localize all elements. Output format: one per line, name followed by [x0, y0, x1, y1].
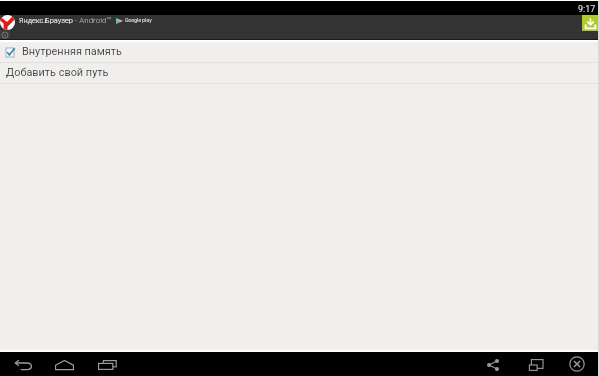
staticText: 9:17 — [578, 4, 596, 15]
button[interactable]: Share — [483, 354, 503, 374]
button[interactable]: Добавить свой путь — [0, 63, 600, 83]
button[interactable]: Close — [568, 354, 588, 374]
staticText: Внутренняя память — [22, 45, 122, 58]
button[interactable]: Recent apps — [94, 354, 119, 374]
button[interactable]: Resize window — [526, 354, 546, 374]
staticText: - Android™ — [75, 16, 112, 25]
button[interactable]: Внутренняя память — [0, 42, 600, 63]
staticText: Яндекс.Браузер — [19, 16, 73, 25]
button[interactable]: Back — [11, 354, 36, 374]
button[interactable]: Install — [582, 15, 598, 31]
button[interactable]: App info — [2, 32, 8, 38]
staticText: Google play — [125, 17, 152, 23]
staticText: Добавить свой путь — [6, 66, 109, 79]
button[interactable]: Home — [51, 354, 76, 374]
